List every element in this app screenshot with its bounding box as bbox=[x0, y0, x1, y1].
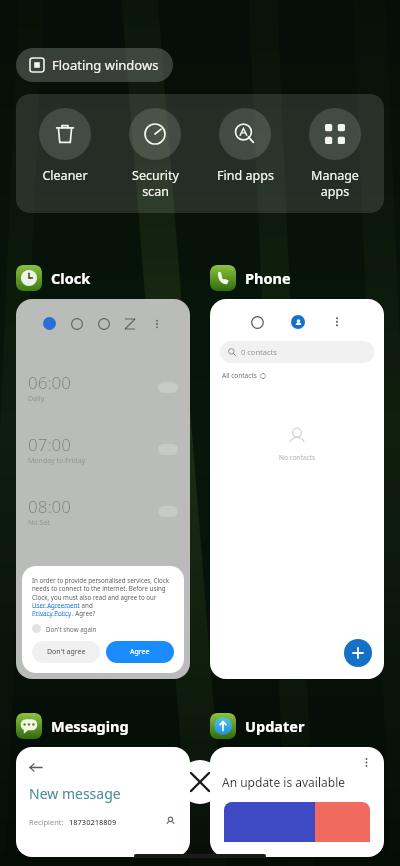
staticText: Agree bbox=[130, 647, 150, 657]
button[interactable]: Messaging bbox=[16, 713, 129, 739]
button[interactable]: Security scan bbox=[114, 108, 196, 199]
staticText: . Agree? bbox=[72, 609, 96, 617]
button[interactable]: Don't agree bbox=[32, 641, 100, 663]
staticText: Privacy Policy bbox=[32, 609, 72, 617]
staticText: and bbox=[80, 601, 95, 609]
staticText: 0 contacts bbox=[241, 347, 277, 357]
button[interactable]: Agree bbox=[106, 641, 174, 663]
staticText: Daily bbox=[28, 394, 45, 404]
button[interactable]: 0 contacts bbox=[210, 299, 384, 679]
staticText: Don't agree bbox=[47, 647, 86, 657]
staticText: Security scan bbox=[132, 167, 179, 199]
button[interactable]: Back bbox=[16, 747, 190, 857]
button[interactable]: Updater bbox=[210, 713, 305, 739]
staticText: 18730218809 bbox=[69, 817, 117, 827]
other: Back bbox=[29, 761, 42, 774]
button[interactable]: 0 contacts bbox=[220, 341, 374, 363]
button[interactable]: All contacts bbox=[222, 371, 266, 380]
staticText: Find apps bbox=[217, 167, 274, 184]
button[interactable]: Cleaner bbox=[24, 108, 106, 184]
staticText: 07:00 bbox=[28, 433, 71, 456]
button[interactable]: Floating windows bbox=[16, 48, 173, 82]
button[interactable]: Phone bbox=[210, 265, 291, 291]
button[interactable]: Find apps bbox=[204, 108, 286, 184]
button[interactable]: Manage apps bbox=[294, 108, 376, 199]
staticText: Recipient: bbox=[29, 817, 64, 827]
staticText: Manage apps bbox=[311, 167, 359, 199]
staticText: Don't show again bbox=[46, 625, 97, 633]
staticText: Floating windows bbox=[52, 56, 159, 74]
button[interactable]: More options bbox=[210, 747, 384, 857]
staticText: 08:00 bbox=[28, 495, 71, 518]
staticText: No contacts bbox=[279, 453, 316, 462]
staticText: Monday to Friday bbox=[28, 456, 86, 466]
staticText: An update is available bbox=[222, 774, 346, 790]
staticText: All contacts bbox=[222, 371, 257, 380]
staticText: User Agreement bbox=[32, 601, 80, 609]
staticText: No Sat bbox=[28, 518, 50, 528]
staticText: Clock bbox=[51, 268, 91, 288]
staticText: Updater bbox=[245, 716, 305, 736]
button[interactable]: Clock bbox=[16, 265, 91, 291]
staticText: Messaging bbox=[51, 716, 129, 736]
staticText: 06:00 bbox=[28, 371, 71, 394]
staticText: In order to provide personalised service… bbox=[32, 576, 174, 601]
staticText: Cleaner bbox=[42, 167, 88, 184]
staticText: Phone bbox=[245, 268, 291, 288]
button[interactable]: Close bbox=[178, 760, 222, 804]
other: More options bbox=[361, 757, 372, 768]
staticText: New message bbox=[29, 784, 121, 803]
button[interactable]: Don't show again bbox=[32, 624, 97, 633]
button[interactable]: Add contact bbox=[344, 639, 372, 667]
button[interactable]: 06:00 bbox=[16, 299, 190, 679]
